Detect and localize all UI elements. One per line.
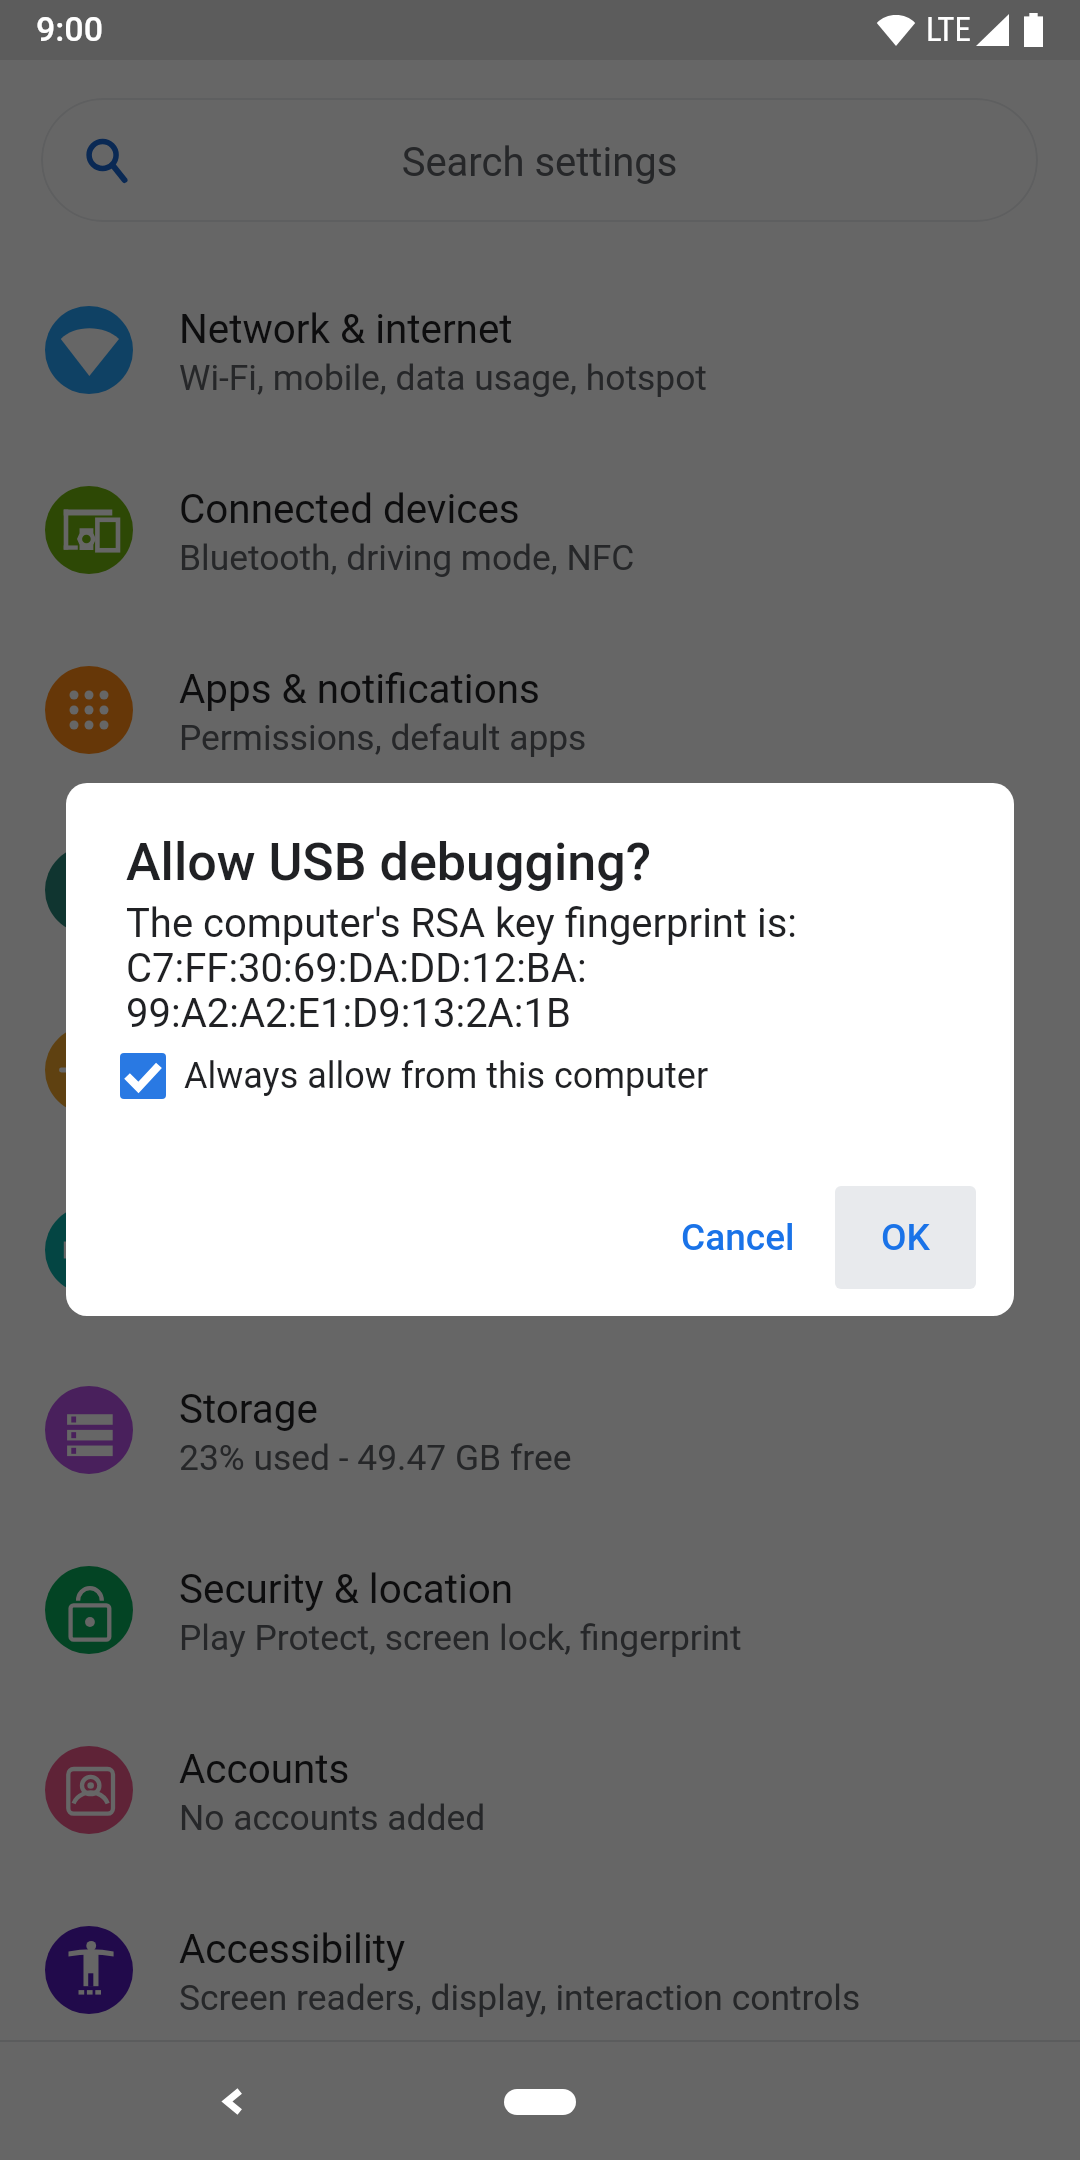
staticText: OK [881,1216,930,1259]
button[interactable]: Sound [0,1160,1080,1340]
button[interactable]: Network & internet [0,260,1080,440]
staticText: Battery [179,846,308,893]
button[interactable]: OK [835,1186,976,1289]
staticText: 42% - 6 hr 12 min left [179,897,509,938]
button[interactable]: Search settings [41,98,1038,222]
staticText: 23% used - 49.47 GB free [179,1437,572,1478]
button[interactable]: Battery [0,800,1080,980]
staticText: Connected devices [179,486,520,533]
staticText: Network & internet [179,306,513,353]
staticText: LTE [926,10,971,49]
staticText: No accounts added [179,1797,486,1838]
button[interactable]: Security & location [0,1520,1080,1700]
button[interactable]: Storage [0,1340,1080,1520]
staticText: Search settings [41,139,1038,186]
staticText: Accessibility [179,1926,406,1973]
button[interactable]: Home [504,2089,576,2115]
staticText: 9:00 [36,9,103,49]
button[interactable]: Accounts [0,1700,1080,1880]
staticText: The computer's RSA key fingerprint is: C… [126,900,798,1036]
button[interactable]: Cancel [657,1186,819,1289]
staticText: Allow USB debugging? [126,832,651,893]
staticText: Permissions, default apps [179,717,587,758]
button[interactable]: Display [0,980,1080,1160]
staticText: Display [179,1026,310,1073]
staticText: Wi-Fi, mobile, data usage, hotspot [179,357,707,398]
button[interactable]: Accessibility [0,1880,1080,2060]
button[interactable]: Back [173,2042,293,2160]
staticText: Apps & notifications [179,666,540,713]
staticText: Accounts [179,1746,350,1793]
staticText: Storage [179,1386,318,1433]
staticText: Security & location [179,1566,514,1613]
button[interactable]: Connected devices [0,440,1080,620]
staticText: Bluetooth, driving mode, NFC [179,537,635,578]
staticText: Wallpaper, sleep, font size [179,1077,585,1118]
staticText: Play Protect, screen lock, fingerprint [179,1617,742,1658]
button[interactable]: Always allow from this computer [120,1053,729,1099]
button[interactable]: Apps & notifications [0,620,1080,800]
staticText: Screen readers, display, interaction con… [179,1977,861,2018]
staticText: Always allow from this computer [184,1055,709,1097]
staticText: Cancel [681,1216,795,1259]
